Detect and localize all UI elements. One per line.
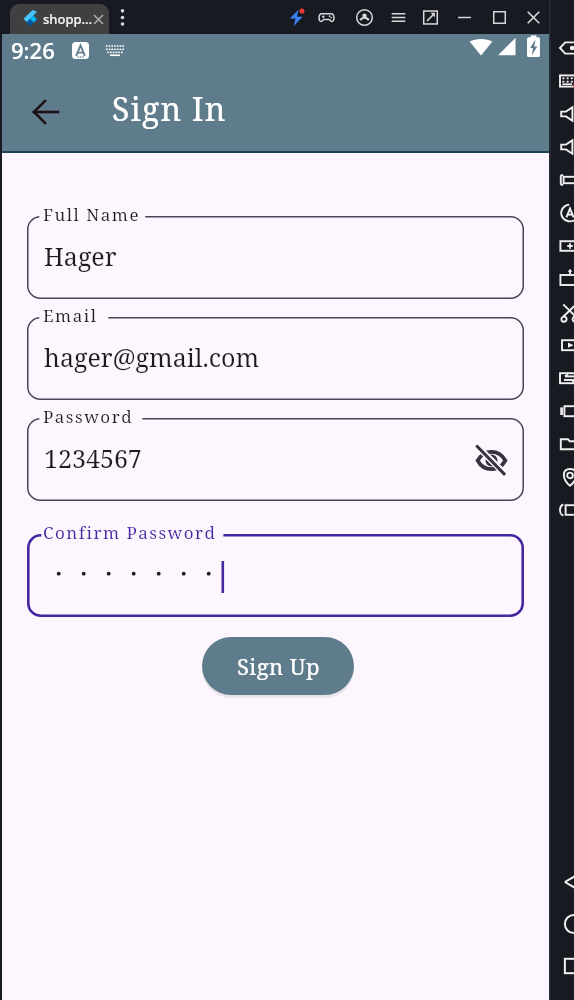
button[interactable]: Toggle password visibility <box>469 438 513 482</box>
button[interactable]: Account <box>349 3 379 31</box>
button[interactable]: shopp... <box>10 4 109 34</box>
staticText: Email <box>43 304 98 327</box>
button[interactable]: Auto rotate <box>557 198 574 228</box>
button[interactable]: Full Name <box>27 216 524 299</box>
button[interactable]: Device manager <box>311 3 341 31</box>
staticText: Password <box>43 405 134 428</box>
button[interactable]: Expand <box>415 3 445 31</box>
other: Battery charging <box>525 35 542 58</box>
button[interactable]: Volume up <box>557 99 574 129</box>
button[interactable]: Recents <box>557 949 574 983</box>
staticText: Sign Up <box>237 651 320 681</box>
button[interactable]: Close tab <box>90 11 106 27</box>
staticText: Sign In <box>112 87 227 131</box>
button[interactable]: Maximize <box>484 3 514 31</box>
button[interactable]: Close <box>518 3 548 31</box>
button[interactable]: Home <box>557 907 574 941</box>
button[interactable]: Confirm Password <box>27 534 524 617</box>
button[interactable]: Minimize <box>449 3 479 31</box>
button[interactable]: Location <box>557 462 574 492</box>
button[interactable]: Power <box>557 33 574 63</box>
button[interactable]: Play <box>557 330 574 360</box>
button[interactable]: Battery <box>557 495 574 525</box>
other: Signal <box>496 36 517 57</box>
button[interactable]: Transfer <box>557 363 574 393</box>
button[interactable]: Folder <box>557 429 574 459</box>
button[interactable]: Menu <box>383 3 413 31</box>
button[interactable]: Volume down <box>557 132 574 162</box>
staticText: 1234567 <box>44 441 142 475</box>
button[interactable]: More options <box>114 6 131 28</box>
button[interactable]: Fold <box>557 396 574 426</box>
button[interactable]: Rotate left <box>557 165 574 195</box>
other: Wi-Fi <box>468 36 494 57</box>
button[interactable]: App install <box>557 264 574 294</box>
button[interactable]: Back <box>557 865 574 899</box>
button[interactable]: Back <box>27 93 65 131</box>
staticText: 9:26 <box>11 35 55 65</box>
button[interactable]: Password <box>27 418 524 501</box>
button[interactable]: Run <box>281 3 311 31</box>
staticText: shopp... <box>43 10 93 28</box>
button[interactable]: Keyboard off <box>557 66 574 96</box>
button[interactable]: Screenshot <box>557 231 574 261</box>
staticText: Full Name <box>43 203 140 226</box>
staticText: Hager <box>44 239 117 273</box>
button[interactable]: Sign Up <box>202 637 354 695</box>
button[interactable]: Email <box>27 317 524 400</box>
staticText: Confirm Password <box>43 521 217 544</box>
staticText: hager@gmail.com <box>44 340 260 374</box>
button[interactable]: Cut <box>557 297 574 327</box>
other: Show keyboard <box>105 45 125 56</box>
other: Keyboard layout <box>72 42 89 59</box>
